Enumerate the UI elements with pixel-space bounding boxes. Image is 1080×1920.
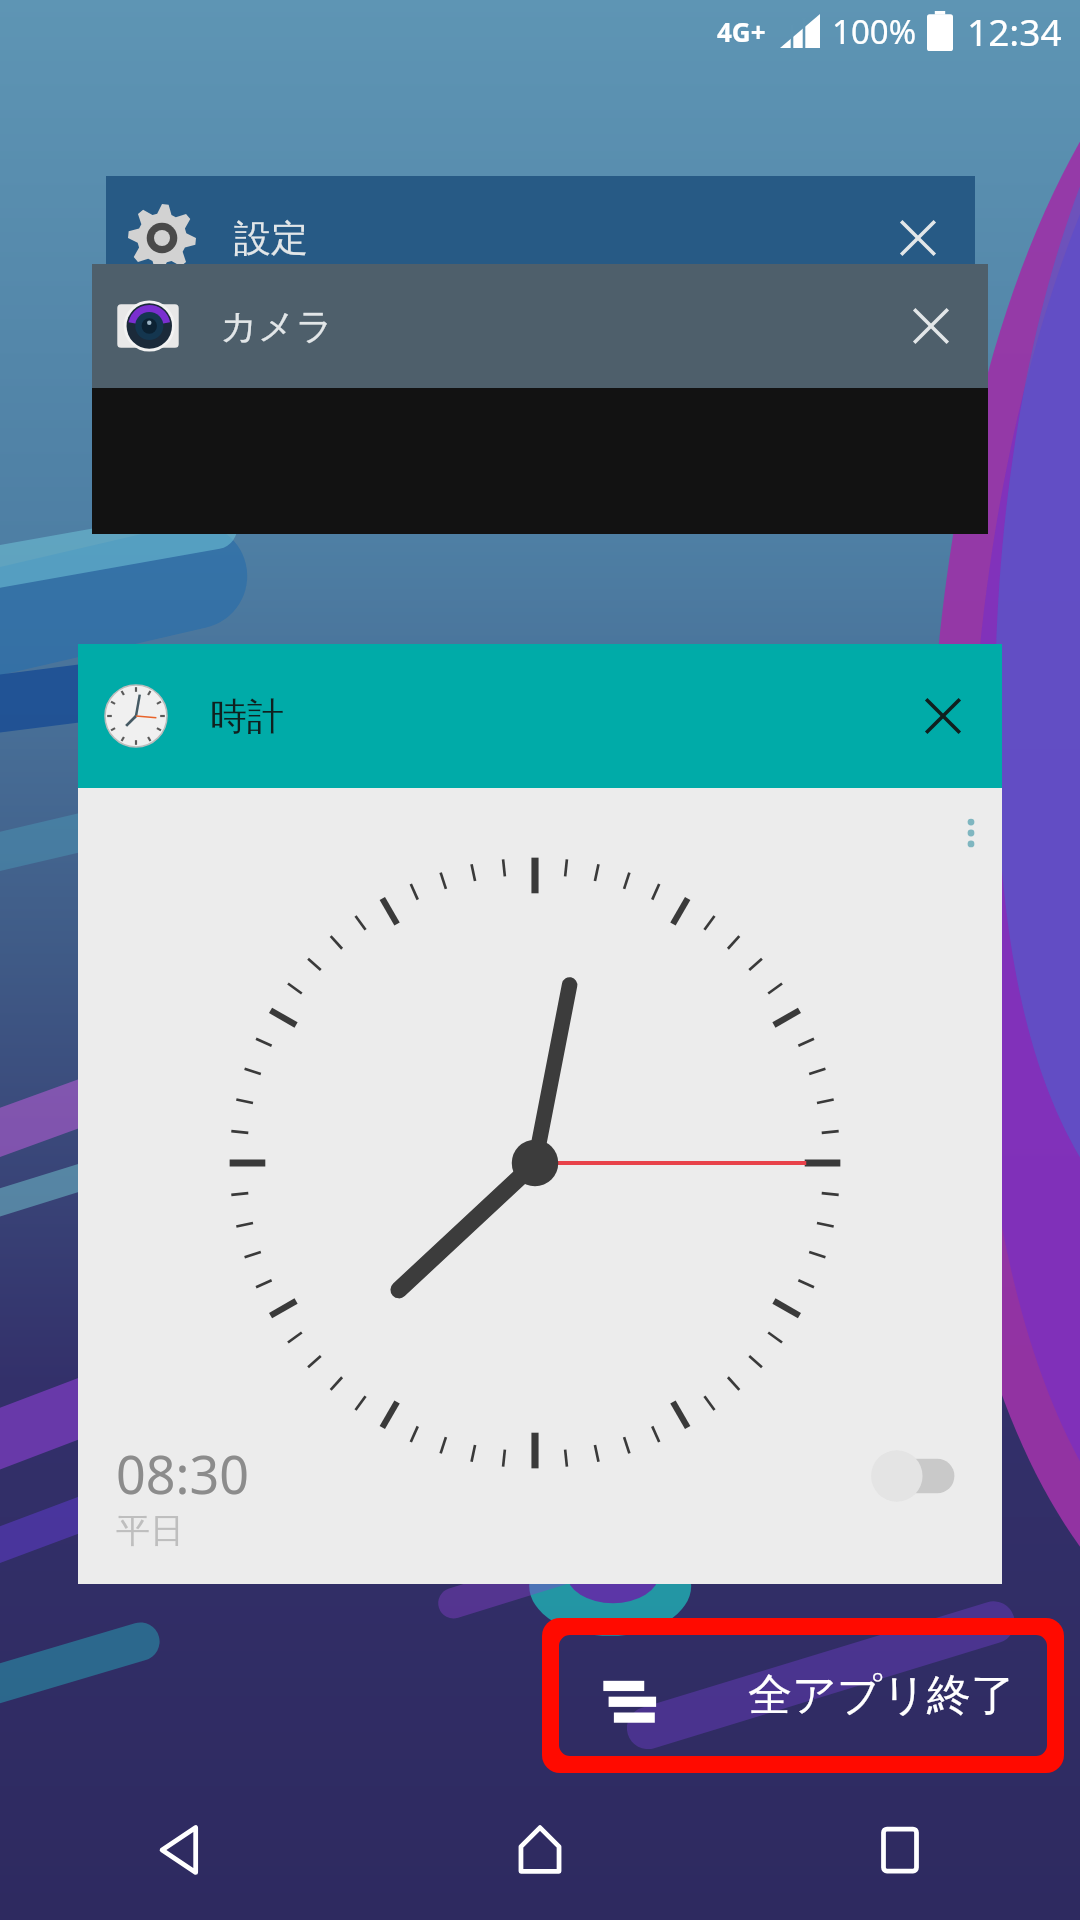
staticText: 08:30 xyxy=(116,1438,249,1509)
button[interactable]: アラームのオン・オフ xyxy=(868,1448,964,1504)
button[interactable]: 全アプリ終了 xyxy=(542,1618,1064,1773)
staticText: 100% xyxy=(832,9,917,54)
button[interactable]: カメラ xyxy=(92,264,988,534)
staticText: 時計 xyxy=(210,693,284,740)
staticText: 平日 xyxy=(116,1509,184,1552)
staticText: 全アプリ終了 xyxy=(748,1668,1016,1723)
button[interactable]: 最近のアプリ xyxy=(720,1780,1080,1920)
button[interactable]: 戻る xyxy=(0,1780,360,1920)
button[interactable]: 閉じる xyxy=(896,291,966,361)
staticText: 設定 xyxy=(234,215,308,262)
button[interactable]: ホーム xyxy=(360,1780,720,1920)
staticText: カメラ xyxy=(220,303,334,350)
button[interactable]: 閉じる xyxy=(883,203,953,273)
button[interactable]: その他のオプション xyxy=(940,802,1002,864)
button[interactable]: 設定 xyxy=(106,176,975,300)
staticText: 12:34 xyxy=(967,6,1062,56)
button[interactable]: 閉じる xyxy=(908,681,978,751)
staticText: 4G+ xyxy=(717,14,766,49)
button[interactable]: 時計 xyxy=(78,644,1002,1584)
